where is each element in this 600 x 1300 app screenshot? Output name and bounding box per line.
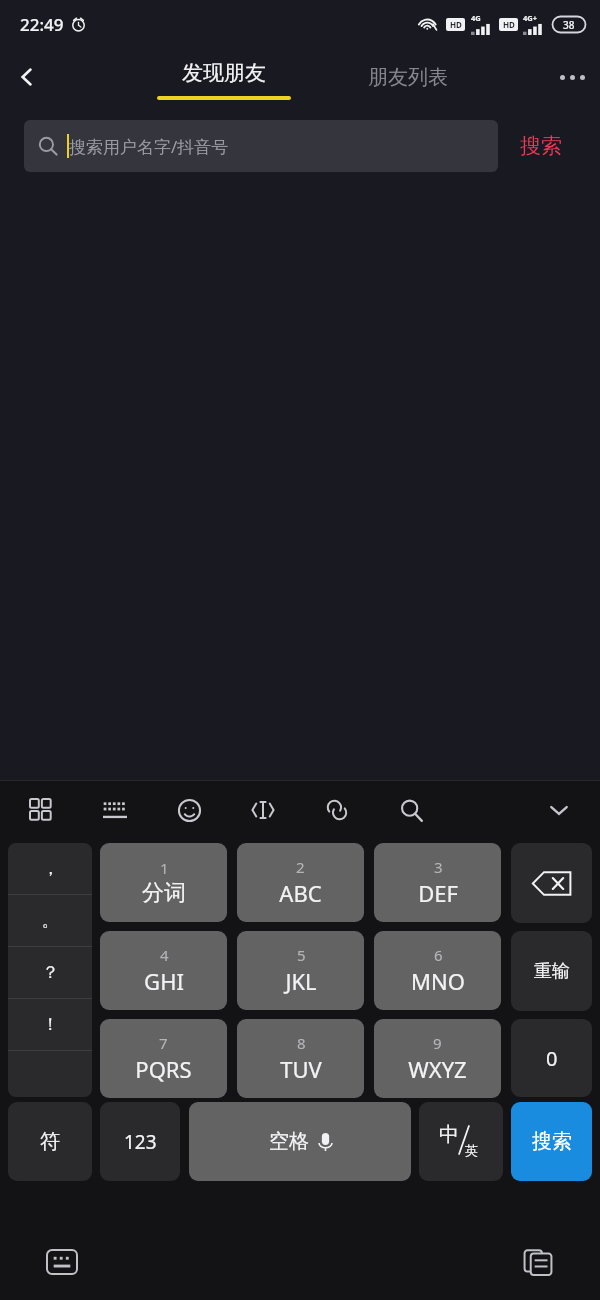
button[interactable]: 搜索 [511, 1102, 592, 1181]
button[interactable]: 3 [374, 843, 501, 922]
staticText: HD [503, 19, 515, 30]
staticText: DEF [418, 878, 458, 908]
button[interactable]: Cursor move [239, 781, 287, 839]
button[interactable]: 9 [374, 1019, 501, 1098]
staticText: 123 [124, 1129, 157, 1155]
staticText: JKL [285, 966, 317, 996]
staticText: TUV [280, 1054, 322, 1084]
staticText: WXYZ [408, 1054, 467, 1084]
button[interactable]: ， [8, 843, 92, 1097]
button[interactable]: Emoji [165, 781, 213, 839]
button[interactable]: 朋友列表 [340, 48, 476, 106]
button[interactable]: Hide keyboard [535, 781, 583, 839]
button[interactable]: Keyboard layout [91, 781, 139, 839]
staticText: 符 [40, 1129, 60, 1154]
staticText: 8 [297, 1033, 306, 1053]
button[interactable]: Clipboard [512, 1236, 564, 1288]
staticText: HD [450, 19, 462, 30]
button[interactable]: 搜索 [498, 106, 584, 186]
staticText: GHI [144, 966, 184, 996]
button[interactable]: 4 [100, 931, 227, 1010]
staticText: 分词 [142, 879, 186, 907]
staticText: 英 [465, 1142, 478, 1158]
staticText: PQRS [135, 1054, 192, 1084]
staticText: 9 [433, 1033, 442, 1053]
staticText: 4G+ [523, 13, 538, 23]
staticText: 搜索用户名字/抖音号 [69, 135, 229, 158]
staticText: 2 [296, 857, 305, 877]
staticText: 5 [297, 945, 306, 965]
staticText: 。 [42, 910, 59, 931]
button[interactable]: 5 [237, 931, 364, 1010]
button[interactable]: 7 [100, 1019, 227, 1098]
staticText: ， [42, 858, 59, 879]
button[interactable]: Clipboard tools [313, 781, 361, 839]
button[interactable]: Switch keyboard [36, 1236, 88, 1288]
button[interactable]: 0 [511, 1019, 592, 1097]
button[interactable]: 中 [419, 1102, 503, 1181]
button[interactable]: Back [0, 50, 54, 104]
staticText: 空格 [269, 1129, 309, 1154]
button[interactable]: 8 [237, 1019, 364, 1098]
button[interactable]: Apps [17, 781, 65, 839]
staticText: 朋友列表 [368, 65, 448, 90]
staticText: 搜索 [520, 133, 562, 159]
staticText: 中 [439, 1122, 459, 1147]
button[interactable]: 6 [374, 931, 501, 1010]
staticText: 发现朋友 [182, 60, 266, 86]
staticText: 搜索 [532, 1129, 572, 1154]
staticText: MNO [411, 966, 465, 996]
staticText: 0 [546, 1045, 558, 1072]
staticText: ！ [42, 1014, 59, 1035]
staticText: 38 [563, 18, 575, 32]
button[interactable]: Search [387, 781, 435, 839]
staticText: 重输 [534, 960, 570, 983]
button[interactable] [511, 843, 592, 923]
button[interactable]: 2 [237, 843, 364, 922]
staticText: 22:49 [20, 13, 64, 36]
button[interactable]: 发现朋友 [157, 48, 291, 106]
button[interactable]: 123 [100, 1102, 180, 1181]
staticText: 3 [434, 857, 443, 877]
button[interactable]: 空格 [189, 1102, 411, 1181]
staticText: ？ [42, 962, 59, 983]
staticText: 4G [471, 13, 481, 23]
button[interactable]: 重输 [511, 931, 592, 1011]
staticText: 1 [160, 858, 169, 878]
staticText: 7 [159, 1033, 168, 1053]
button[interactable]: 符 [8, 1102, 92, 1181]
staticText: 4 [160, 945, 169, 965]
button[interactable]: 搜索用户名字/抖音号 [24, 120, 498, 172]
button[interactable]: More options [544, 49, 600, 105]
staticText: ABC [279, 878, 322, 908]
staticText: 6 [434, 945, 443, 965]
button[interactable]: 1 [100, 843, 227, 922]
